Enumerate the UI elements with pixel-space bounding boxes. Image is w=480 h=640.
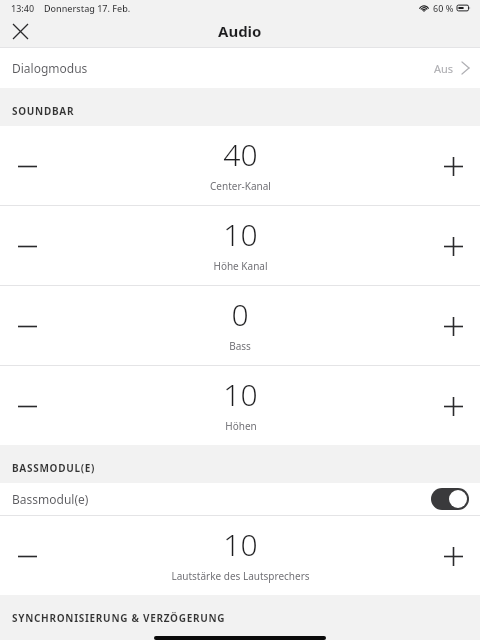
staticText: SOUNDBAR	[12, 104, 75, 118]
staticText: Höhen	[225, 419, 257, 433]
staticText: Bass	[229, 339, 251, 353]
staticText: Center-Kanal	[210, 179, 271, 193]
button[interactable]: Increase Höhe Kanal	[426, 219, 480, 273]
button[interactable]: Increase Lautstärke des Lautsprechers	[426, 529, 480, 583]
staticText: Bassmodul(e)	[12, 491, 89, 507]
button[interactable]: Decrease Lautstärke des Lautsprechers	[0, 529, 54, 583]
button[interactable]: Close	[0, 15, 42, 47]
button[interactable]: Increase Bass	[426, 299, 480, 353]
button[interactable]: Decrease Bass	[0, 299, 54, 353]
staticText: 10	[223, 374, 258, 415]
button[interactable]: Increase Höhen	[426, 379, 480, 433]
staticText: BASSMODUL(E)	[12, 461, 96, 475]
button[interactable]: Decrease Höhen	[0, 379, 54, 433]
button[interactable]: Bassmodul(e)	[0, 483, 480, 515]
staticText: 13:40	[11, 2, 35, 14]
staticText: Aus	[434, 61, 454, 76]
staticText: Lautstärke des Lautsprechers	[171, 569, 310, 583]
button[interactable]: Decrease Höhe Kanal	[0, 219, 54, 273]
staticText: 40	[223, 134, 258, 175]
button[interactable]: Dialogmodus	[0, 48, 480, 88]
staticText: Audio	[218, 21, 262, 41]
staticText: 0	[231, 294, 249, 335]
button[interactable]: Decrease Center-Kanal	[0, 139, 54, 193]
staticText: Donnerstag 17. Feb.	[44, 2, 131, 14]
staticText: 60 %	[433, 2, 454, 14]
staticText: SYNCHRONISIERUNG & VERZÖGERUNG	[12, 611, 226, 625]
staticText: 10	[223, 214, 258, 255]
button[interactable]: Increase Center-Kanal	[426, 139, 480, 193]
staticText: 10	[223, 524, 258, 565]
staticText: Höhe Kanal	[213, 259, 268, 273]
staticText: Dialogmodus	[12, 60, 88, 76]
